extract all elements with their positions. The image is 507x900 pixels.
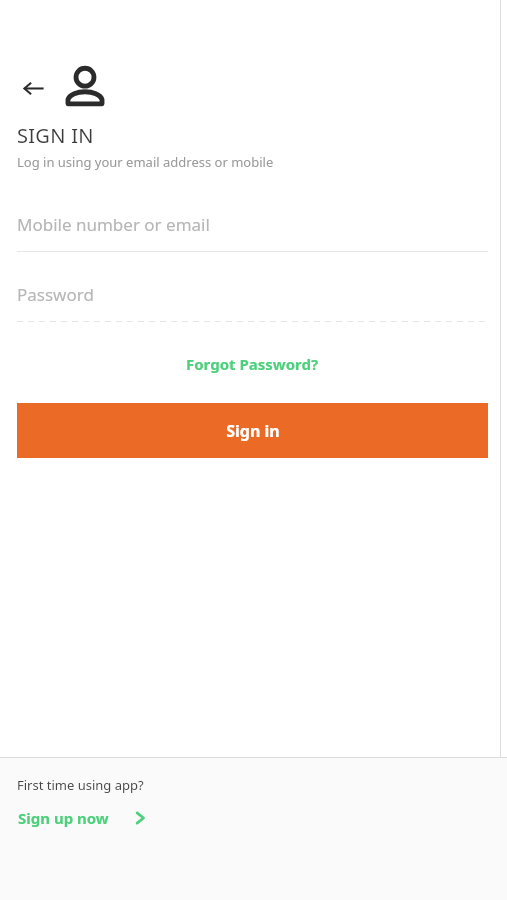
staticText: Mobile number or email [17,213,210,236]
staticText: SIGN IN [17,122,94,149]
staticText: Sign up now [18,808,109,828]
button[interactable]: Sign up now [17,805,150,831]
staticText: Log in using your email address or mobil… [17,153,274,171]
button[interactable]: Sign in [17,403,488,458]
button[interactable]: Password [17,276,488,312]
staticText: Sign in [226,420,280,442]
button[interactable]: Mobile number or email [17,206,488,242]
button[interactable]: Back [17,71,51,105]
staticText: Password [17,283,94,306]
staticText: First time using app? [17,776,144,794]
button[interactable]: Forgot Password? [180,350,325,378]
staticText: Forgot Password? [186,354,319,374]
